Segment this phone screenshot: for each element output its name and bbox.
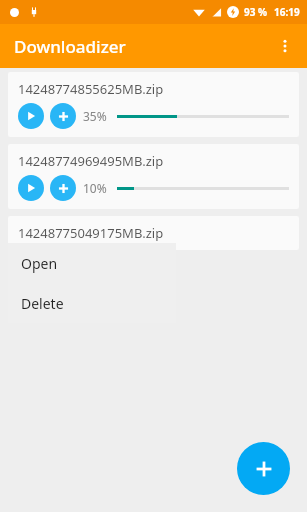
- button[interactable]: Add: [50, 103, 76, 129]
- staticText: 16:19: [274, 5, 300, 19]
- staticText: Open: [21, 254, 58, 273]
- button[interactable]: More options: [266, 27, 304, 65]
- staticText: 93 %: [244, 5, 268, 19]
- staticText: 14248774969495MB.zip: [18, 152, 164, 170]
- button[interactable]: 14248775049175MB.zip: [8, 216, 299, 250]
- button[interactable]: Add download: [237, 442, 290, 495]
- button[interactable]: Add: [50, 175, 76, 201]
- button[interactable]: 14248774969495MB.zip: [8, 144, 299, 209]
- staticText: 14248774855625MB.zip: [18, 80, 164, 98]
- button[interactable]: 14248774855625MB.zip: [8, 72, 299, 137]
- staticText: 35%: [83, 108, 107, 124]
- button[interactable]: Play download: [18, 103, 44, 129]
- staticText: Delete: [21, 294, 64, 313]
- staticText: 10%: [83, 180, 107, 196]
- staticText: 14248775049175MB.zip: [18, 224, 164, 242]
- button[interactable]: Play download: [18, 175, 44, 201]
- button[interactable]: Open: [8, 243, 176, 283]
- button[interactable]: Delete: [8, 283, 176, 323]
- staticText: Downloadizer: [14, 35, 126, 58]
